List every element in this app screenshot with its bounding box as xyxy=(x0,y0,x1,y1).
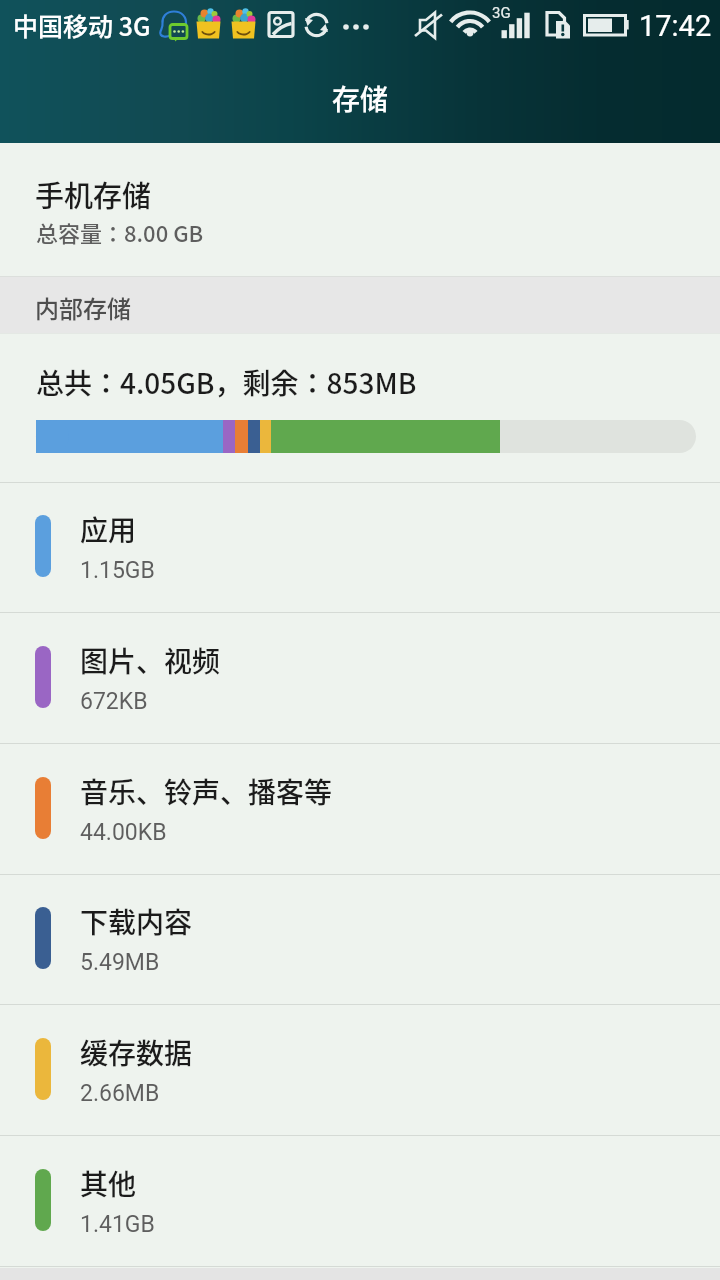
staticText: 5.49MB xyxy=(80,949,160,976)
staticText: 2.66MB xyxy=(80,1080,160,1107)
staticText: 图片、视频 xyxy=(80,640,221,681)
staticText: 下载内容 xyxy=(80,901,193,942)
button[interactable]: 图片、视频 xyxy=(0,613,720,744)
staticText: 中国移动 3G xyxy=(13,7,151,43)
staticText: 3G xyxy=(492,4,511,22)
other: Status icons xyxy=(155,0,575,52)
button[interactable]: 手机存储 xyxy=(0,143,720,277)
staticText: 44.00KB xyxy=(80,819,167,846)
staticText: 音乐、铃声、播客等 xyxy=(80,771,333,812)
staticText: 内部存储 xyxy=(35,290,131,325)
staticText: 17:42 xyxy=(639,9,712,43)
staticText: 1.41GB xyxy=(80,1211,155,1238)
staticText: 应用 xyxy=(80,509,137,550)
staticText: 存储 xyxy=(332,78,389,119)
button[interactable]: 应用 xyxy=(0,482,720,613)
staticText: 总共：4.05GB，剩余：853MB xyxy=(36,362,417,403)
staticText: 缓存数据 xyxy=(80,1032,193,1073)
button[interactable]: 其他 xyxy=(0,1136,720,1267)
staticText: 总容量：8.00 GB xyxy=(36,216,204,248)
staticText: 672KB xyxy=(80,688,148,715)
button[interactable]: 音乐、铃声、播客等 xyxy=(0,744,720,875)
staticText: 手机存储 xyxy=(35,173,152,215)
staticText: 1.15GB xyxy=(80,557,155,584)
staticText: 其他 xyxy=(80,1163,137,1204)
button[interactable]: 下载内容 xyxy=(0,874,720,1005)
button[interactable]: 缓存数据 xyxy=(0,1005,720,1136)
